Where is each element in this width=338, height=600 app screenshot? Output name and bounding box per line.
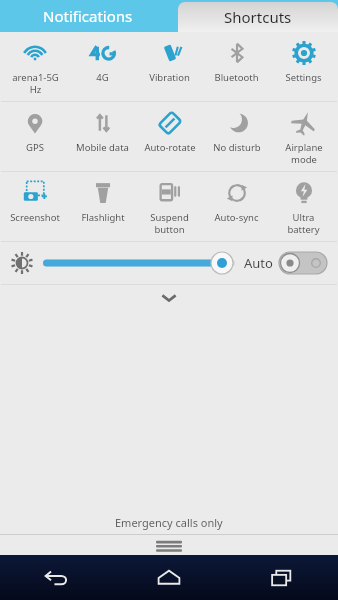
staticText: Bluetooth	[214, 71, 259, 84]
staticText: Auto-rotate	[144, 141, 196, 154]
button[interactable]: Auto-rotate	[136, 102, 203, 171]
button[interactable]: Screenshot	[1, 172, 69, 241]
staticText: Flashlight	[81, 211, 125, 224]
button[interactable]: Mobile data	[69, 102, 136, 171]
button[interactable]: 4G	[69, 32, 136, 101]
button[interactable]: Drag handle	[0, 535, 338, 555]
button[interactable]: Airplane mode	[270, 102, 337, 171]
staticText: Emergency calls only	[115, 515, 223, 530]
button[interactable]: Suspend button	[136, 172, 203, 241]
button[interactable]: Auto-sync	[203, 172, 270, 241]
other: Brightness	[11, 252, 33, 274]
staticText: Notifications	[43, 6, 133, 26]
staticText: arena1-5G Hz	[12, 71, 59, 95]
staticText: Auto-sync	[214, 211, 259, 224]
staticText: Mobile data	[76, 141, 129, 154]
button[interactable]: Brightness slider	[43, 250, 235, 276]
button[interactable]: Notifications	[0, 0, 176, 32]
staticText: Settings	[285, 71, 322, 84]
button[interactable]: Shortcuts	[178, 2, 338, 32]
button[interactable]: arena1-5G Hz	[1, 32, 69, 101]
button[interactable]: Recents	[225, 555, 338, 600]
button[interactable]: Bluetooth	[203, 32, 270, 101]
staticText: Ultra battery	[287, 211, 320, 235]
button[interactable]: Vibration	[136, 32, 203, 101]
button[interactable]: Ultra battery	[270, 172, 337, 241]
button[interactable]: Auto brightness toggle	[279, 252, 327, 274]
button[interactable]: Flashlight	[69, 172, 136, 241]
staticText: No disturb	[213, 141, 261, 154]
button[interactable]: No disturb	[203, 102, 270, 171]
staticText: Shortcuts	[224, 7, 292, 27]
staticText: Vibration	[149, 71, 190, 84]
staticText: Suspend button	[150, 211, 189, 235]
staticText: Screenshot	[10, 211, 60, 224]
staticText: 4G	[96, 71, 109, 84]
staticText: Airplane mode	[285, 141, 323, 165]
button[interactable]: Back	[0, 555, 112, 600]
button[interactable]: Home	[112, 555, 225, 600]
button[interactable]: GPS	[1, 102, 69, 171]
button[interactable]: Settings	[270, 32, 337, 101]
button[interactable]: Expand panel	[1, 285, 337, 311]
staticText: Auto	[244, 254, 273, 272]
staticText: GPS	[26, 141, 44, 154]
